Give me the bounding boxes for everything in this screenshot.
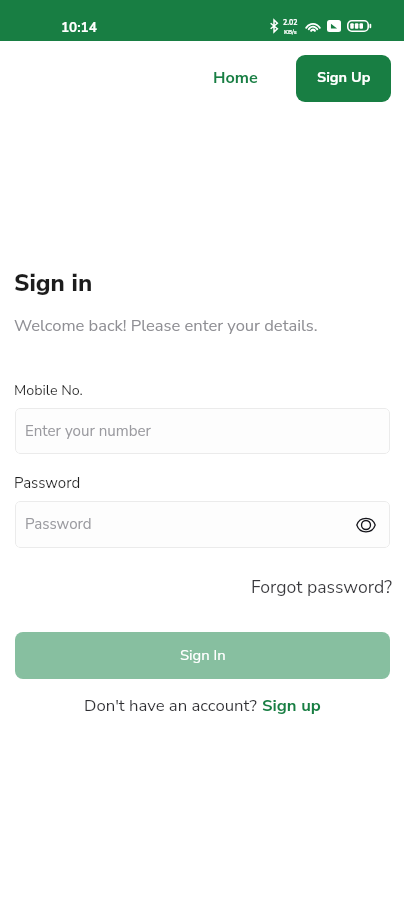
staticText: Sign up — [262, 694, 321, 717]
button[interactable]: Forgot password? — [251, 575, 392, 599]
staticText: Sign In — [180, 645, 226, 665]
staticText: Mobile No. — [14, 381, 83, 401]
button[interactable]: Home — [213, 55, 258, 102]
staticText: Password — [25, 514, 92, 535]
staticText: Home — [213, 67, 258, 89]
button[interactable]: Enter your number — [15, 408, 390, 454]
button[interactable]: Sign up — [262, 694, 321, 717]
button[interactable]: Show password — [356, 516, 376, 534]
staticText: Sign Up — [317, 67, 371, 87]
button[interactable]: Sign In — [15, 632, 390, 679]
staticText: KB/s — [284, 28, 297, 36]
button[interactable]: Sign Up — [296, 55, 391, 102]
staticText: Forgot password? — [251, 575, 392, 599]
button[interactable]: Password — [15, 501, 390, 548]
staticText: Don't have an account? — [84, 694, 262, 717]
staticText: Password — [14, 473, 81, 493]
staticText: 10:14 — [61, 18, 97, 36]
staticText: Sign in — [14, 267, 93, 300]
staticText: Enter your number — [25, 421, 151, 442]
staticText: 2.02 — [283, 18, 298, 28]
staticText: Welcome back! Please enter your details. — [14, 314, 318, 337]
